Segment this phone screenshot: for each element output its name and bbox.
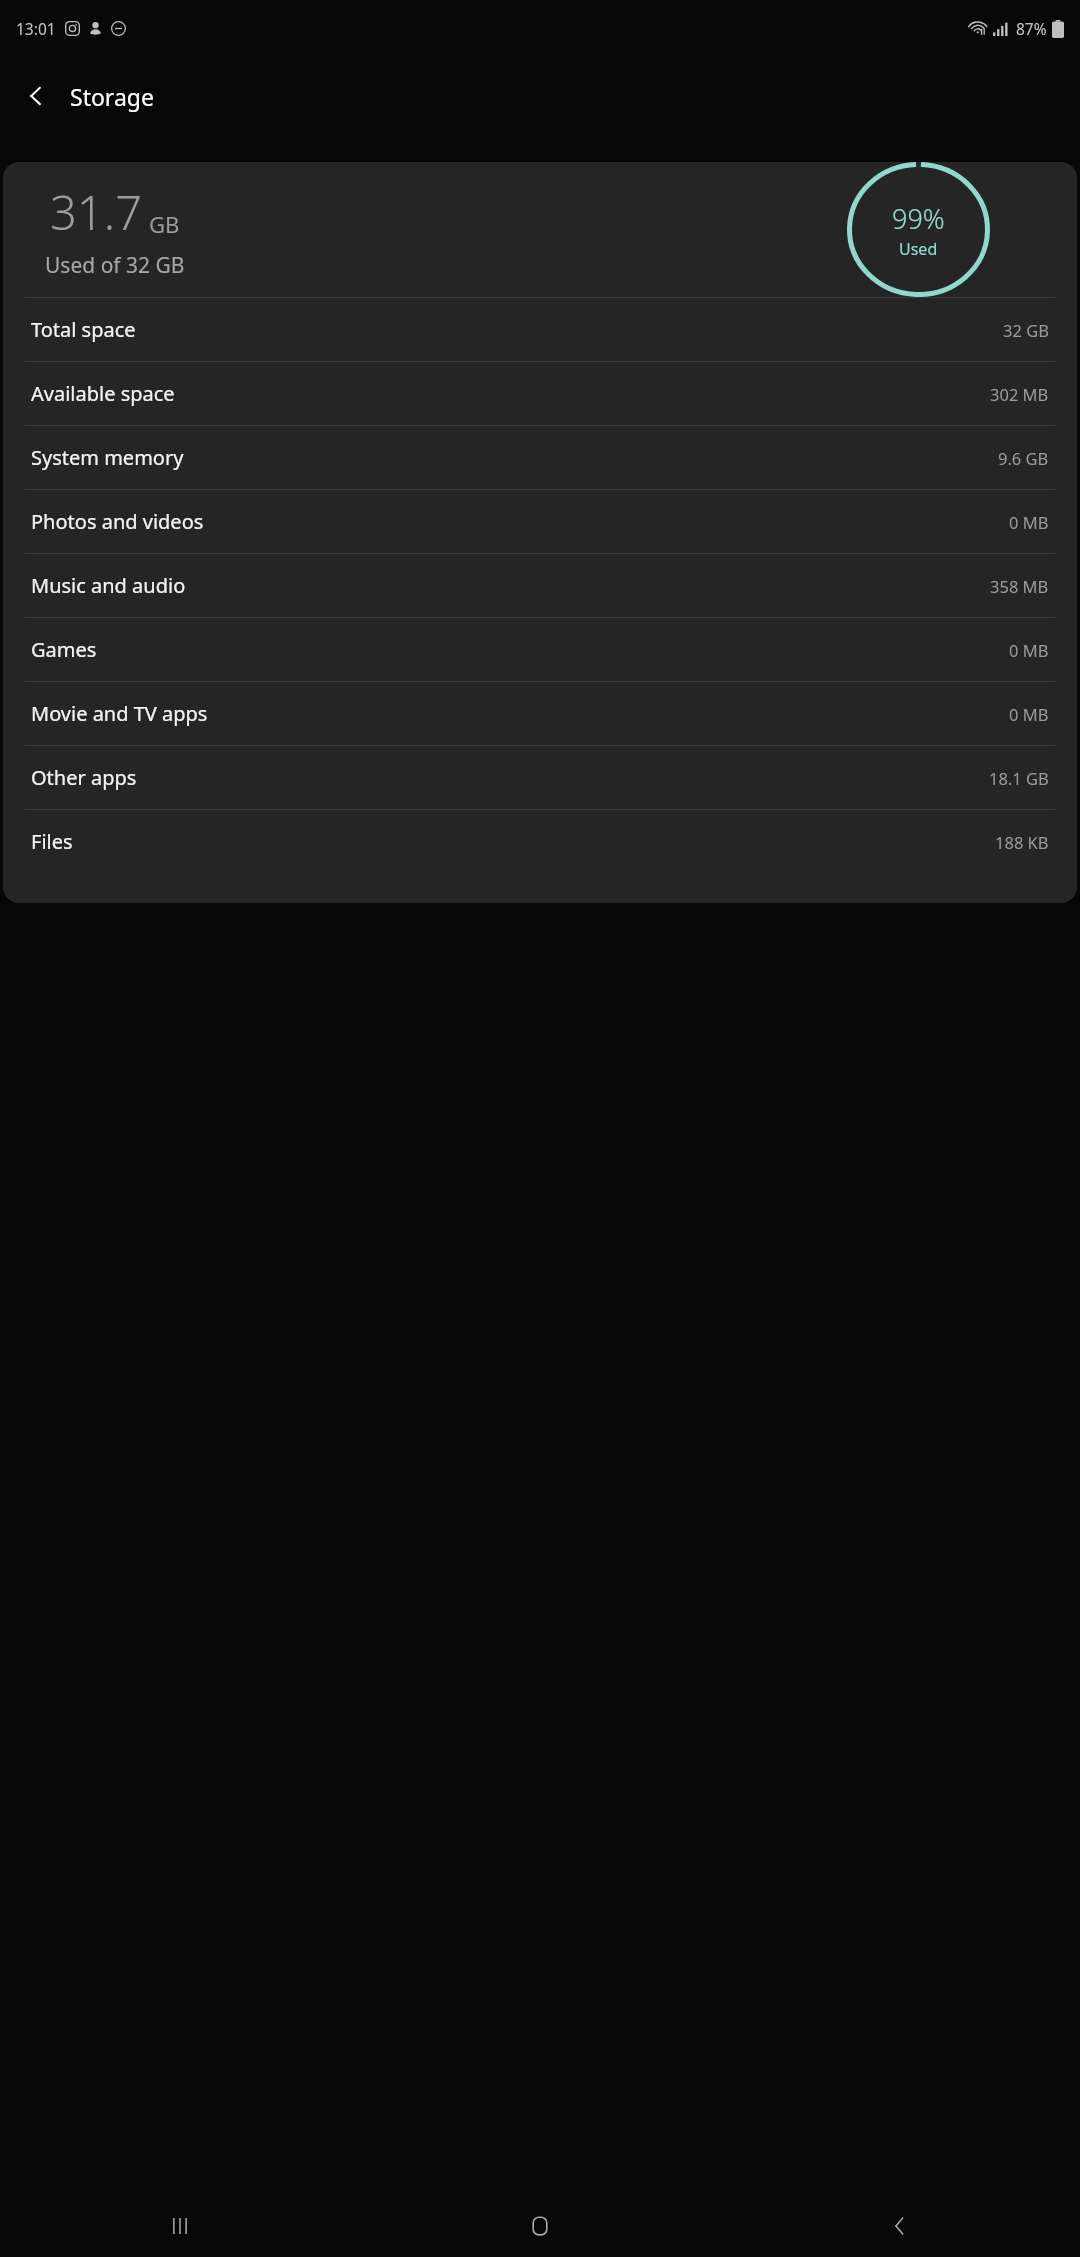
staticText: 9.6 GB: [998, 447, 1049, 469]
staticText: 0 MB: [1009, 703, 1049, 725]
staticText: 87%: [1016, 18, 1047, 39]
staticText: Movie and TV apps: [31, 700, 208, 727]
staticText: 99%: [892, 200, 945, 237]
staticText: System memory: [31, 444, 184, 471]
button[interactable]: Files: [3, 810, 1077, 873]
staticText: 18.1 GB: [989, 767, 1049, 789]
button[interactable]: Games: [3, 618, 1077, 681]
button[interactable]: Total space: [3, 298, 1077, 361]
staticText: Files: [31, 828, 73, 855]
button[interactable]: Back: [720, 2195, 1080, 2257]
staticText: Available space: [31, 380, 175, 407]
staticText: 0 MB: [1009, 639, 1049, 661]
button[interactable]: Music and audio: [3, 554, 1077, 617]
button[interactable]: Home: [360, 2195, 720, 2257]
staticText: Games: [31, 636, 97, 663]
staticText: 302 MB: [990, 383, 1049, 405]
button[interactable]: System memory: [3, 426, 1077, 489]
staticText: 31.7: [50, 180, 142, 244]
staticText: 188 KB: [995, 831, 1049, 853]
staticText: 32 GB: [1003, 319, 1049, 341]
staticText: Used: [899, 238, 938, 260]
staticText: Music and audio: [31, 572, 186, 599]
button[interactable]: Back: [8, 68, 64, 124]
button[interactable]: Movie and TV apps: [3, 682, 1077, 745]
staticText: 358 MB: [990, 575, 1049, 597]
staticText: Used of 32 GB: [45, 251, 185, 280]
staticText: GB: [149, 209, 180, 239]
button[interactable]: Available space: [3, 362, 1077, 425]
staticText: 13:01: [16, 18, 56, 39]
staticText: Storage: [70, 81, 154, 112]
button[interactable]: Recents: [0, 2195, 360, 2257]
staticText: Total space: [31, 316, 136, 343]
button[interactable]: Other apps: [3, 746, 1077, 809]
button[interactable]: Photos and videos: [3, 490, 1077, 553]
staticText: Other apps: [31, 764, 137, 791]
staticText: 0 MB: [1009, 511, 1049, 533]
staticText: Photos and videos: [31, 508, 204, 535]
